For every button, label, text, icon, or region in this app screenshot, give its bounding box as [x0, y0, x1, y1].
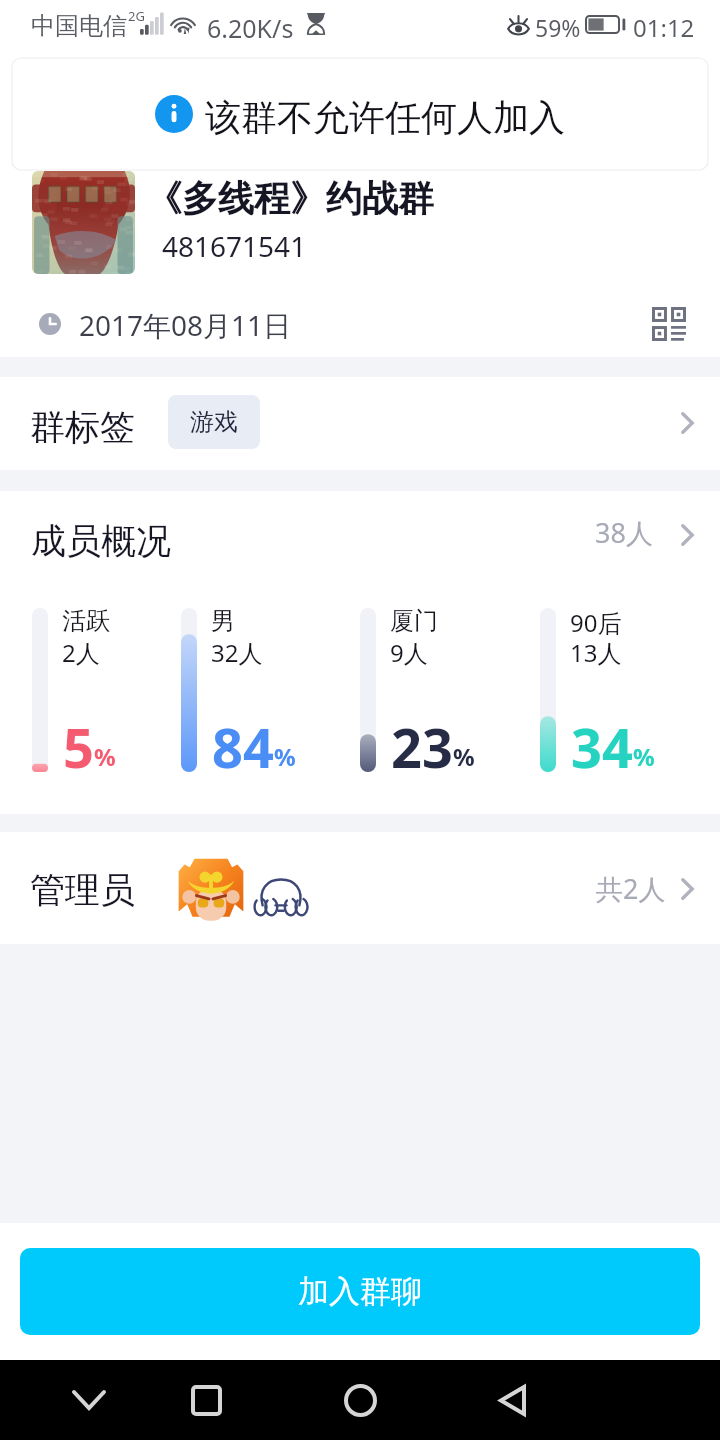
staticText: 《多线程》约战群	[146, 176, 434, 221]
button[interactable]	[0, 491, 720, 571]
staticText: 2人	[62, 636, 100, 669]
staticText: 38人	[595, 514, 653, 551]
staticText: 6.20K/s	[207, 11, 294, 45]
staticText: 管理员	[30, 868, 135, 912]
button[interactable]: Hide keyboard	[54, 1365, 124, 1435]
staticText: %	[453, 740, 475, 773]
staticText: 游戏	[190, 407, 238, 437]
staticText: 84	[212, 710, 274, 784]
button[interactable]: Recent apps	[171, 1365, 241, 1435]
staticText: 34	[571, 710, 633, 784]
staticText: 群标签	[30, 405, 135, 449]
staticText: 23	[391, 710, 453, 784]
button[interactable]: 加入群聊	[20, 1248, 700, 1335]
staticText: 9人	[390, 636, 428, 669]
staticText: 加入群聊	[298, 1272, 422, 1311]
staticText: 共2人	[596, 870, 666, 907]
staticText: 32人	[211, 636, 263, 669]
staticText: 2G	[128, 7, 145, 25]
staticText: 男	[211, 606, 235, 636]
staticText: 90后	[570, 606, 622, 639]
staticText: 01:12	[633, 11, 695, 44]
button[interactable]: Back	[477, 1365, 547, 1435]
button[interactable]: Home	[325, 1365, 395, 1435]
staticText: 活跃	[62, 606, 110, 636]
button[interactable]	[0, 377, 720, 470]
staticText: 成员概况	[31, 519, 171, 563]
staticText: 厦门	[390, 606, 438, 636]
staticText: %	[274, 740, 296, 773]
button[interactable]	[0, 832, 720, 944]
button[interactable]: Group avatar	[32, 171, 135, 274]
staticText: 481671541	[162, 227, 307, 265]
staticText: 该群不允许任何人加入	[205, 95, 565, 140]
staticText: 5	[63, 710, 94, 784]
staticText: %	[633, 740, 655, 773]
button[interactable]: 该群不允许任何人加入	[12, 58, 708, 170]
staticText: %	[94, 740, 116, 773]
staticText: 2017年08月11日	[79, 306, 292, 344]
staticText: 59%	[535, 12, 581, 43]
staticText: 13人	[570, 636, 622, 669]
staticText: 中国电信	[31, 11, 127, 41]
button[interactable]: Group QR code	[637, 292, 701, 356]
